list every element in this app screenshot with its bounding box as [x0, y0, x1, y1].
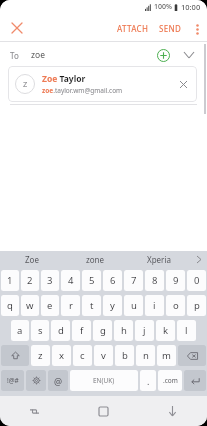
button[interactable]: Period: [140, 370, 156, 391]
staticText: y: [110, 299, 115, 312]
button[interactable]: u: [124, 295, 143, 316]
button[interactable]: Close: [6, 17, 28, 39]
staticText: 10:00: [181, 2, 201, 12]
staticText: Zoe: [25, 254, 39, 265]
button[interactable]: 1: [1, 270, 19, 291]
button[interactable]: m: [157, 345, 176, 366]
button[interactable]: Backspace: [178, 345, 206, 366]
button[interactable]: 4: [61, 270, 80, 291]
staticText: o: [173, 299, 179, 312]
button[interactable]: 2: [21, 270, 39, 291]
staticText: h: [121, 324, 127, 337]
button[interactable]: Shift: [1, 345, 29, 366]
button[interactable]: At sign: [48, 370, 68, 391]
button[interactable]: v: [94, 345, 113, 366]
button[interactable]: f: [72, 320, 91, 341]
button[interactable]: h: [114, 320, 133, 341]
staticText: Z: [23, 79, 28, 89]
button[interactable]: 8: [145, 270, 164, 291]
button[interactable]: Xperia: [127, 251, 191, 268]
button[interactable]: l: [177, 320, 196, 341]
staticText: m: [162, 349, 171, 362]
staticText: n: [143, 349, 149, 362]
button[interactable]: k: [156, 320, 175, 341]
button[interactable]: Add recipient: [155, 47, 171, 63]
button[interactable]: x: [52, 345, 71, 366]
button[interactable]: More suggestions: [191, 251, 207, 268]
staticText: zone: [86, 254, 105, 265]
staticText: q: [7, 299, 13, 312]
staticText: @: [54, 375, 63, 387]
staticText: r: [69, 299, 73, 312]
staticText: !@#: [7, 376, 19, 385]
staticText: k: [163, 324, 169, 337]
button[interactable]: Dot com: [158, 370, 182, 391]
button[interactable]: r: [61, 295, 80, 316]
staticText: z: [38, 349, 43, 362]
staticText: 3: [47, 274, 53, 287]
button[interactable]: More options: [187, 19, 207, 39]
button[interactable]: a: [11, 320, 29, 341]
button[interactable]: 9: [166, 270, 185, 291]
staticText: .com: [163, 376, 178, 385]
staticText: t: [90, 299, 94, 312]
staticText: e: [47, 299, 53, 312]
staticText: SEND: [159, 23, 182, 34]
button[interactable]: p: [187, 295, 206, 316]
button[interactable]: q: [1, 295, 19, 316]
staticText: ATTACH: [117, 23, 149, 34]
button[interactable]: w: [21, 295, 39, 316]
staticText: c: [80, 349, 85, 362]
button[interactable]: SEND: [154, 17, 187, 40]
staticText: 2: [27, 274, 33, 287]
staticText: a: [17, 324, 23, 337]
button[interactable]: Z: [8, 66, 197, 102]
staticText: v: [101, 349, 106, 362]
button[interactable]: 7: [124, 270, 143, 291]
staticText: b: [122, 349, 128, 362]
button[interactable]: z: [31, 345, 50, 366]
button[interactable]: Dismiss suggestion: [176, 77, 190, 91]
staticText: .: [147, 375, 150, 387]
button[interactable]: d: [51, 320, 70, 341]
staticText: i: [153, 299, 156, 312]
button[interactable]: Keyboard settings: [26, 370, 46, 391]
button[interactable]: s: [31, 320, 49, 341]
staticText: 9: [173, 274, 179, 287]
staticText: To: [10, 50, 19, 61]
button[interactable]: Home: [69, 396, 138, 426]
staticText: Xperia: [147, 254, 171, 265]
button[interactable]: 3: [41, 270, 59, 291]
button[interactable]: Symbols: [1, 370, 24, 391]
button[interactable]: i: [145, 295, 164, 316]
button[interactable]: e: [41, 295, 59, 316]
button[interactable]: Hide keyboard: [138, 396, 207, 426]
staticText: f: [80, 324, 84, 337]
button[interactable]: b: [115, 345, 134, 366]
button[interactable]: j: [135, 320, 154, 341]
button[interactable]: 6: [103, 270, 122, 291]
staticText: p: [194, 299, 200, 312]
button[interactable]: Zoe: [0, 251, 63, 268]
button[interactable]: ATTACH: [112, 17, 154, 40]
button[interactable]: c: [73, 345, 92, 366]
staticText: l: [185, 324, 188, 337]
button[interactable]: t: [82, 295, 101, 316]
staticText: s: [38, 324, 43, 337]
staticText: 8: [152, 274, 158, 287]
button[interactable]: Enter: [184, 370, 206, 391]
button[interactable]: o: [166, 295, 185, 316]
button[interactable]: zone: [63, 251, 127, 268]
button[interactable]: Recent apps: [0, 396, 69, 426]
button[interactable]: 5: [82, 270, 101, 291]
button[interactable]: n: [136, 345, 155, 366]
button[interactable]: g: [93, 320, 112, 341]
button[interactable]: Space: [70, 370, 138, 391]
button[interactable]: 0: [187, 270, 206, 291]
staticText: Zoe Taylor: [42, 73, 86, 85]
staticText: zoe: [31, 49, 45, 61]
staticText: 4: [68, 274, 74, 287]
staticText: g: [100, 324, 106, 337]
button[interactable]: Expand recipients: [181, 47, 197, 63]
button[interactable]: y: [103, 295, 122, 316]
